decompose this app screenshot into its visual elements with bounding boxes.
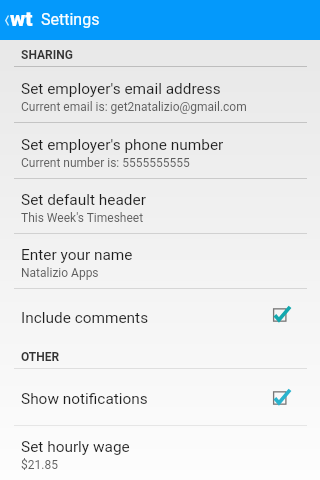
staticText: OTHER [21,350,60,364]
button[interactable]: Show notifications [0,369,320,425]
other: Toggle [273,388,291,408]
staticText: Settings [41,10,100,29]
staticText: $21.85 [21,458,58,472]
button[interactable]: Set employer's email address [0,67,320,122]
staticText: Current email is: get2natalizio@gmail.co… [21,100,247,114]
staticText: Show notifications [21,390,148,408]
button[interactable]: Navigate up [0,0,40,40]
staticText: Set employer's phone number [21,136,224,154]
staticText: Set default header [21,191,146,209]
button[interactable]: Set default header [0,179,320,233]
button[interactable]: Enter your name [0,234,320,288]
button[interactable]: Set hourly wage [0,426,320,480]
staticText: Natalizio Apps [21,266,99,280]
staticText: Include comments [21,309,149,327]
staticText: SHARING [21,48,73,62]
staticText: Enter your name [21,246,133,264]
other: Toggle [273,305,291,325]
staticText: wt [10,7,33,32]
staticText: Set employer's email address [21,80,221,98]
staticText: Current number is: 5555555555 [21,156,190,170]
staticText: Set hourly wage [21,438,130,456]
button[interactable]: Set employer's phone number [0,123,320,178]
staticText: This Week's Timesheet [21,211,144,225]
button[interactable]: Include comments [0,289,320,343]
